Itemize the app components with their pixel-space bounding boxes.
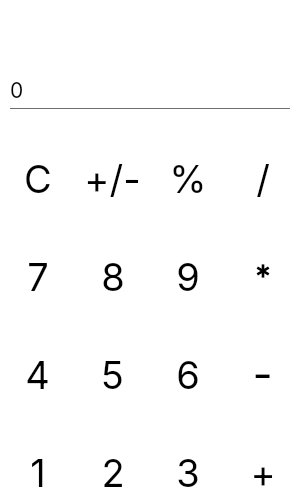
staticText: 8 [101, 254, 125, 300]
staticText: 7 [27, 254, 49, 300]
button[interactable]: 3 [150, 424, 225, 500]
staticText: - [252, 347, 273, 400]
staticText: 0 [10, 78, 24, 103]
button[interactable]: 1 [0, 424, 75, 500]
button[interactable]: 5 [75, 326, 150, 424]
button[interactable]: 2 [75, 424, 150, 500]
button[interactable]: Percent [150, 130, 225, 228]
staticText: 3 [176, 450, 200, 496]
button[interactable]: 4 [0, 326, 75, 424]
button[interactable]: 9 [150, 228, 225, 326]
button[interactable]: Multiply [225, 228, 300, 326]
button[interactable]: 6 [150, 326, 225, 424]
staticText: 4 [25, 352, 50, 398]
button[interactable]: Divide [225, 130, 300, 228]
staticText: / [256, 156, 270, 202]
staticText: 1 [30, 450, 46, 496]
button[interactable]: 0 [10, 78, 290, 103]
staticText: 9 [176, 254, 200, 300]
staticText: 6 [176, 352, 200, 398]
staticText: 2 [101, 450, 125, 496]
staticText: +/- [84, 156, 141, 202]
staticText: + [250, 450, 276, 496]
button[interactable]: 8 [75, 228, 150, 326]
button[interactable]: Subtract [225, 326, 300, 424]
button[interactable]: Add [225, 424, 300, 500]
button[interactable]: Plus minus [75, 130, 150, 228]
staticText: 5 [101, 352, 124, 398]
staticText: C [24, 156, 52, 202]
staticText: % [169, 156, 207, 202]
button[interactable]: Clear [0, 130, 75, 228]
button[interactable]: 7 [0, 228, 75, 326]
